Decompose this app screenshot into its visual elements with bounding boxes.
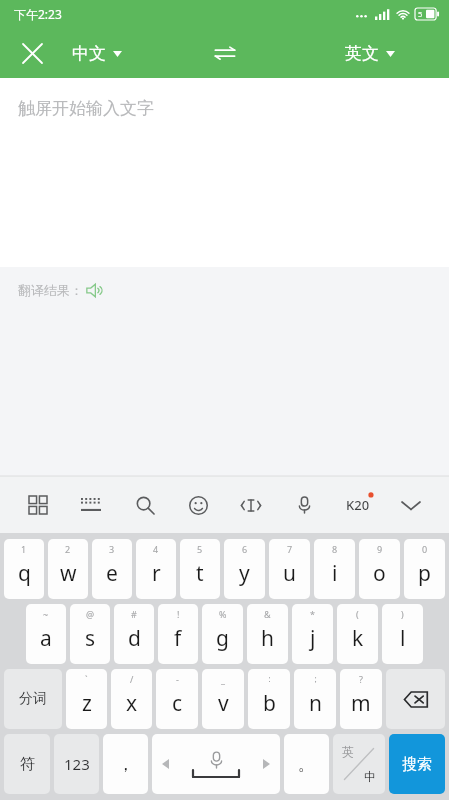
button[interactable]: 2	[48, 539, 88, 599]
button[interactable]: 6	[224, 539, 265, 599]
button[interactable]: 8	[314, 539, 355, 599]
button[interactable]: *	[292, 604, 333, 664]
staticText: 触屏开始输入文字	[18, 98, 154, 119]
button[interactable]: 3	[92, 539, 132, 599]
button[interactable]: 英文	[339, 37, 401, 70]
button[interactable]: &	[247, 604, 288, 664]
staticText: a	[40, 624, 52, 653]
staticText: n	[309, 689, 322, 718]
button[interactable]: 4	[136, 539, 176, 599]
staticText: %	[219, 608, 227, 620]
staticText: /	[130, 673, 134, 685]
button[interactable]: 7	[269, 539, 310, 599]
button[interactable]: Keyboard layout	[71, 485, 111, 525]
staticText: 英文	[345, 43, 379, 64]
staticText: q	[18, 559, 31, 588]
staticText: u	[283, 559, 296, 588]
staticText: 1	[21, 543, 27, 555]
staticText: @	[86, 608, 95, 620]
button[interactable]: ；	[294, 669, 336, 729]
staticText: 0	[422, 543, 428, 555]
staticText: )	[401, 608, 404, 620]
staticText: p	[418, 559, 431, 588]
staticText: 分词	[19, 690, 47, 708]
staticText: j	[310, 624, 316, 653]
button[interactable]: 符	[4, 734, 50, 794]
button[interactable]: 9	[359, 539, 400, 599]
button[interactable]: 5	[180, 539, 220, 599]
staticText: g	[216, 624, 229, 653]
button[interactable]: Play translation	[83, 279, 105, 301]
staticText: !	[177, 608, 180, 620]
staticText: 6	[242, 543, 248, 555]
button[interactable]: %	[202, 604, 243, 664]
button[interactable]: 1	[4, 539, 44, 599]
staticText: &	[264, 608, 271, 620]
staticText: (	[356, 608, 359, 620]
button[interactable]: ，	[103, 734, 148, 794]
staticText: 符	[20, 755, 35, 774]
button[interactable]: _	[202, 669, 244, 729]
staticText: 4	[153, 543, 159, 555]
button[interactable]: ~	[26, 604, 66, 664]
button[interactable]: English Chinese toggle	[333, 734, 385, 794]
staticText: h	[261, 624, 274, 653]
staticText: 3	[109, 543, 115, 555]
staticText: `	[85, 673, 88, 685]
button[interactable]: `	[66, 669, 107, 729]
staticText: s	[85, 624, 96, 653]
button[interactable]: 0	[404, 539, 445, 599]
button[interactable]: -	[156, 669, 198, 729]
staticText: 下午2:23	[14, 6, 62, 22]
staticText: -	[176, 673, 179, 685]
staticText: _	[221, 673, 225, 685]
button[interactable]: (	[337, 604, 378, 664]
staticText: z	[82, 689, 92, 718]
button[interactable]: 搜索	[389, 734, 445, 794]
button[interactable]: Emoji	[178, 485, 218, 525]
button[interactable]: K20	[338, 485, 378, 525]
button[interactable]: ：	[248, 669, 290, 729]
staticText: 8	[332, 543, 338, 555]
staticText: k	[352, 624, 364, 653]
staticText: r	[152, 559, 161, 588]
button[interactable]: 分词	[4, 669, 62, 729]
button[interactable]: @	[70, 604, 110, 664]
staticText: 。	[298, 754, 315, 775]
staticText: ?	[359, 673, 363, 685]
staticText: i	[332, 559, 338, 588]
button[interactable]: 123	[54, 734, 99, 794]
button[interactable]: Close	[8, 29, 56, 77]
staticText: ，	[117, 754, 134, 775]
button[interactable]: 触屏开始输入文字	[0, 78, 449, 267]
staticText: o	[373, 559, 386, 588]
button[interactable]: #	[114, 604, 154, 664]
button[interactable]: Hide keyboard	[391, 485, 431, 525]
staticText: m	[351, 689, 371, 718]
button[interactable]: Search	[125, 485, 165, 525]
button[interactable]: 。	[284, 734, 329, 794]
staticText: v	[218, 689, 229, 718]
button[interactable]: !	[158, 604, 198, 664]
button[interactable]: Apps	[18, 485, 58, 525]
button[interactable]: Backspace	[386, 669, 445, 729]
staticText: K20	[346, 496, 370, 514]
button[interactable]: Voice input	[284, 485, 324, 525]
staticText: w	[60, 559, 77, 588]
button[interactable]: 中文	[66, 37, 128, 70]
staticText: #	[131, 608, 137, 620]
button[interactable]: Text edit	[231, 485, 271, 525]
staticText: 2	[65, 543, 71, 555]
button[interactable]: Space, voice input	[152, 734, 280, 794]
staticText: x	[126, 689, 138, 718]
button[interactable]: Swap languages	[203, 31, 247, 75]
button[interactable]: ?	[340, 669, 382, 729]
staticText: d	[128, 624, 141, 653]
staticText: 英	[342, 744, 354, 759]
staticText: ：	[265, 673, 274, 684]
button[interactable]: )	[382, 604, 423, 664]
button[interactable]: /	[111, 669, 152, 729]
staticText: l	[400, 624, 406, 653]
staticText: b	[263, 689, 276, 718]
staticText: ；	[311, 673, 320, 684]
